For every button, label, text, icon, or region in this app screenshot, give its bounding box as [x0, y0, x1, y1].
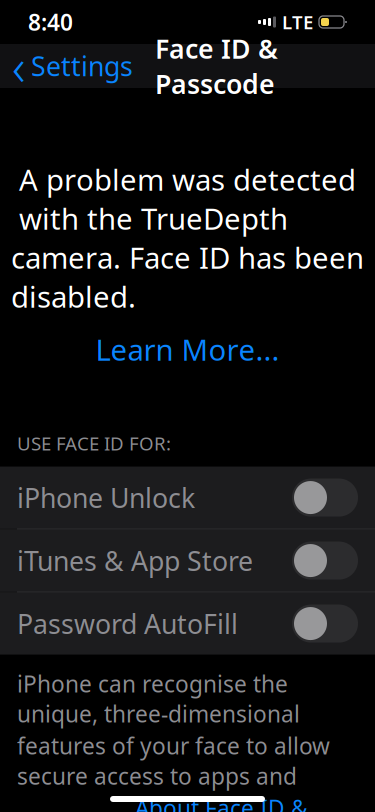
staticText: Password AutoFill: [17, 606, 238, 641]
staticText: LTE: [282, 10, 313, 34]
button[interactable]: iTunes & App Store: [0, 530, 375, 592]
staticText: USE FACE ID FOR:: [17, 431, 171, 456]
staticText: iPhone can recognise the unique, three-d…: [17, 669, 300, 729]
staticText: Settings: [31, 48, 133, 84]
staticText: 8:40: [28, 7, 73, 37]
button[interactable]: Password AutoFill: [0, 593, 375, 655]
staticText: camera. Face ID has been disabled.: [11, 238, 364, 316]
staticText: Learn More...: [95, 330, 279, 369]
staticText: About Face ID & Privacy...: [135, 793, 308, 812]
button[interactable]: About Face ID & Privacy...: [135, 793, 308, 812]
staticText: iPhone Unlock: [17, 480, 195, 515]
staticText: A problem was detected with the TrueDept…: [19, 160, 356, 238]
staticText: Face ID & Passcode: [155, 31, 278, 101]
button[interactable]: Learn More...: [95, 316, 279, 369]
button[interactable]: iPhone Unlock: [0, 467, 375, 529]
staticText: ‹: [12, 32, 25, 100]
staticText: features of your face to allow secure ac…: [17, 731, 330, 791]
button[interactable]: ‹: [0, 44, 143, 88]
staticText: iTunes & App Store: [17, 543, 253, 578]
